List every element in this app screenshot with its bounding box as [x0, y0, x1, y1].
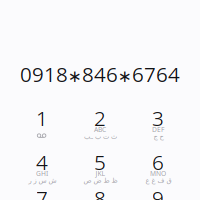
staticText: 3 — [152, 104, 164, 132]
button[interactable]: 9 — [129, 187, 187, 200]
staticText: 7 — [36, 184, 48, 200]
staticText: 9 — [152, 184, 164, 200]
staticText: MNO — [150, 169, 166, 178]
button[interactable]: 1 — [13, 107, 71, 149]
button[interactable]: 7 — [13, 187, 71, 200]
staticText: ظ ط ض ص — [83, 177, 117, 184]
staticText: 5 — [94, 148, 106, 176]
button[interactable]: 3 — [129, 107, 187, 149]
staticText: 6 — [152, 148, 164, 176]
staticText: JKL — [95, 169, 104, 178]
button[interactable]: 2 — [71, 107, 129, 149]
button[interactable]: 5 — [71, 151, 129, 193]
staticText: ث ت ب ـب — [83, 133, 116, 140]
staticText: 0918∗846∗6764 — [20, 60, 180, 88]
staticText: ش س ز ر — [28, 177, 56, 184]
staticText: 4 — [36, 148, 48, 176]
staticText: GHI — [36, 169, 48, 178]
staticText: 2 — [94, 104, 106, 132]
staticText: 8 — [94, 184, 106, 200]
staticText: ح ج — [153, 133, 163, 140]
button[interactable]: 4 — [13, 151, 71, 193]
button[interactable]: 6 — [129, 151, 187, 193]
staticText: 1 — [36, 104, 48, 132]
staticText: ق ف غ ع — [145, 177, 171, 184]
button[interactable]: 8 — [71, 187, 129, 200]
staticText: ABC — [94, 125, 106, 134]
button[interactable]: 0918∗846∗6764 — [5, 64, 195, 84]
staticText: DEF — [152, 125, 164, 134]
